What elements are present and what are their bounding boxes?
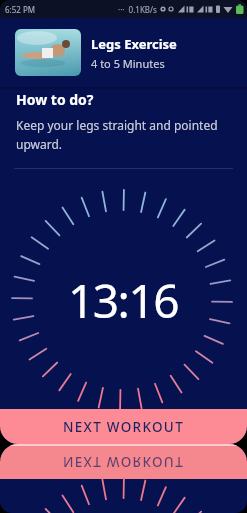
staticText: 13:16 (68, 269, 179, 332)
staticText: NEXT WORKOUT (63, 418, 185, 436)
staticText: Keep your legs straight and pointed upwa… (16, 117, 231, 152)
staticText: Legs Exercise (91, 35, 177, 53)
button[interactable]: Legs Exercise (0, 18, 247, 87)
staticText: NEXT WORKOUT (63, 453, 185, 471)
staticText: How to do? (16, 90, 94, 109)
staticText: 6:52 PM (5, 4, 36, 15)
staticText: ··· 0.1KB/s (118, 4, 157, 15)
staticText: 4 to 5 Minutes (91, 56, 165, 71)
button[interactable]: NEXT WORKOUT (0, 409, 247, 444)
